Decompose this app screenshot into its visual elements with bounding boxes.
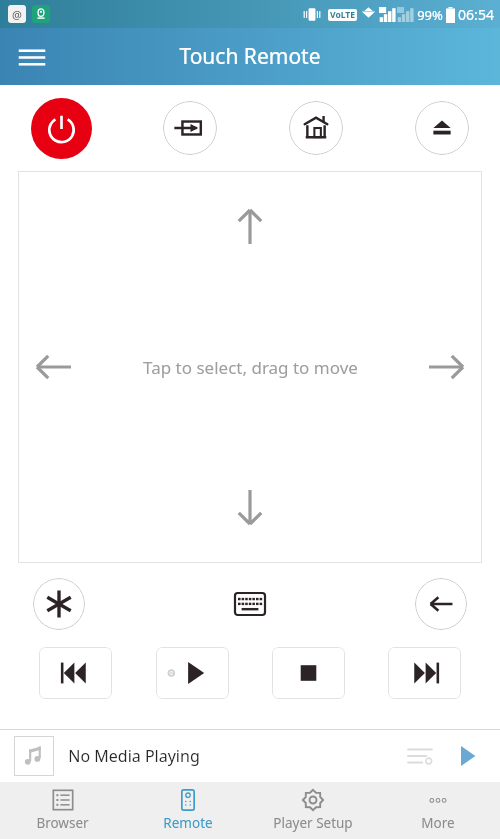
button[interactable]: More xyxy=(375,782,500,839)
button[interactable]: Input xyxy=(163,101,217,155)
button[interactable]: No Media Playing xyxy=(0,730,500,782)
button[interactable]: Play xyxy=(448,737,486,775)
button[interactable]: Play xyxy=(156,647,229,699)
button[interactable]: Tap to select, drag to move xyxy=(18,171,482,563)
button[interactable]: Player Setup xyxy=(250,782,375,839)
button[interactable]: Stop xyxy=(272,647,345,699)
button[interactable]: Power xyxy=(31,98,92,159)
staticText: Touch Remote xyxy=(179,42,321,71)
staticText: Player Setup xyxy=(273,814,353,832)
staticText: Tap to select, drag to move xyxy=(143,356,358,379)
button[interactable]: Asterisk xyxy=(33,578,85,630)
staticText: Remote xyxy=(163,814,213,832)
staticText: VoLTE xyxy=(330,9,355,21)
staticText: 06:54 xyxy=(458,5,494,24)
button[interactable]: Menu xyxy=(8,33,56,81)
button[interactable]: Remote xyxy=(125,782,250,839)
staticText: No Media Playing xyxy=(68,745,200,767)
button[interactable]: Next xyxy=(388,647,461,699)
button[interactable]: Keyboard xyxy=(225,582,275,626)
button[interactable]: Playlist xyxy=(402,737,440,775)
button[interactable]: Eject xyxy=(415,101,469,155)
button[interactable]: Home xyxy=(289,101,343,155)
staticText: @ xyxy=(12,7,22,22)
staticText: More xyxy=(421,814,455,832)
button[interactable]: Previous xyxy=(39,647,112,699)
button[interactable]: Back xyxy=(415,578,467,630)
staticText: 99% xyxy=(417,6,443,24)
button[interactable]: Browser xyxy=(0,782,125,839)
staticText: Browser xyxy=(36,814,89,832)
